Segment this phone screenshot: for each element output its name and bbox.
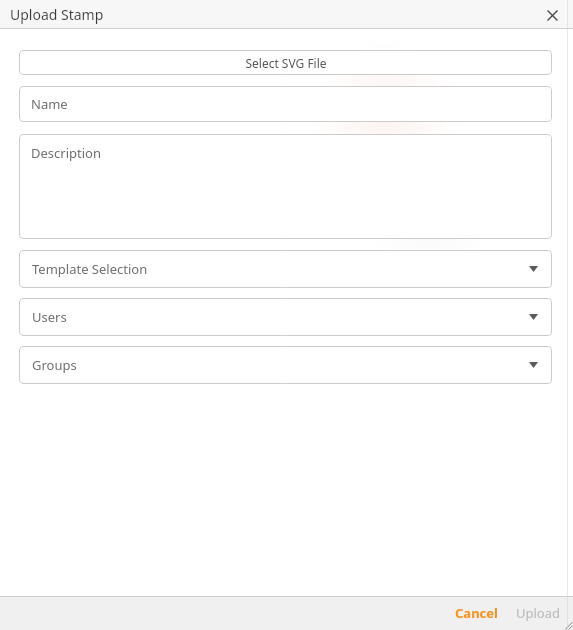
staticText: Users — [32, 308, 67, 326]
staticText: Select SVG File — [245, 55, 327, 71]
staticText: Groups — [32, 356, 77, 374]
button[interactable]: Groups — [19, 346, 552, 384]
staticText: Upload — [516, 604, 561, 622]
staticText: Name — [31, 95, 68, 113]
button[interactable]: Upload — [508, 596, 573, 630]
button[interactable]: Close — [539, 2, 565, 28]
staticText: Template Selection — [32, 260, 148, 278]
staticText: Description — [31, 144, 101, 162]
button[interactable]: Users — [19, 298, 552, 336]
button[interactable]: Cancel — [445, 596, 508, 630]
button[interactable]: Select SVG File — [19, 50, 552, 75]
button[interactable]: Template Selection — [19, 250, 552, 288]
button[interactable]: Description — [19, 134, 552, 239]
button[interactable]: Name — [19, 86, 552, 122]
staticText: Upload Stamp — [10, 5, 104, 24]
staticText: Cancel — [455, 604, 498, 622]
